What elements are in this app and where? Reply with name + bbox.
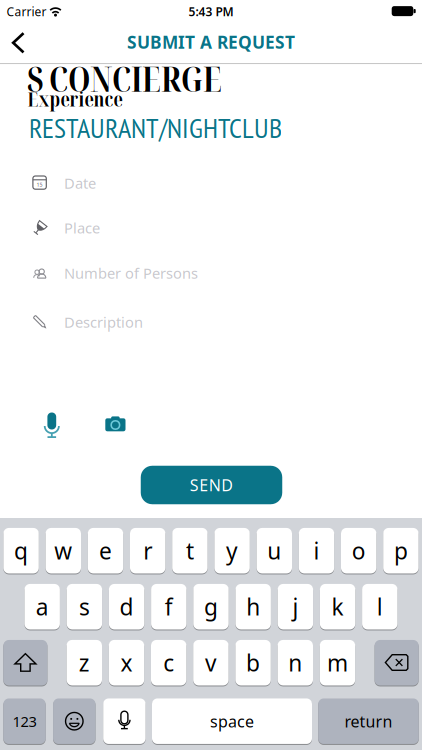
button[interactable]: a: [24, 583, 60, 630]
button[interactable]: Shift: [3, 639, 47, 686]
staticText: z: [79, 648, 90, 678]
staticText: l: [377, 592, 383, 622]
staticText: Carrier: [6, 3, 46, 19]
button[interactable]: SEND: [141, 466, 282, 504]
staticText: n: [288, 648, 302, 678]
button[interactable]: j: [278, 583, 313, 630]
button[interactable]: q: [3, 527, 39, 574]
staticText: r: [143, 536, 152, 566]
button[interactable]: s: [67, 583, 102, 630]
staticText: h: [246, 592, 260, 622]
button[interactable]: u: [257, 527, 292, 574]
button[interactable]: z: [67, 639, 102, 686]
staticText: b: [246, 648, 260, 678]
button[interactable]: k: [320, 583, 355, 630]
staticText: Experience: [27, 85, 122, 112]
staticText: SEND: [190, 474, 233, 496]
staticText: k: [332, 592, 344, 622]
button[interactable]: c: [151, 639, 186, 686]
button[interactable]: l: [362, 583, 397, 630]
button[interactable]: g: [193, 583, 229, 630]
staticText: SUBMIT A REQUEST: [127, 30, 295, 53]
staticText: return: [344, 711, 392, 732]
button[interactable]: o: [341, 527, 376, 574]
staticText: S CONCIERGE: [27, 55, 222, 102]
staticText: Date: [64, 173, 96, 193]
button[interactable]: m: [320, 639, 355, 686]
button[interactable]: Back: [6, 31, 32, 55]
staticText: p: [394, 536, 408, 566]
button[interactable]: Number of Persons: [64, 263, 198, 283]
button[interactable]: p: [383, 527, 419, 574]
staticText: q: [14, 536, 28, 566]
button[interactable]: i: [299, 527, 334, 574]
button[interactable]: r: [130, 527, 165, 574]
staticText: u: [267, 536, 281, 566]
button[interactable]: Dictate: [103, 698, 146, 744]
button[interactable]: f: [151, 583, 186, 630]
button[interactable]: Description: [64, 312, 143, 332]
button[interactable]: Delete: [375, 639, 419, 686]
button[interactable]: Place: [64, 218, 100, 237]
staticText: m: [327, 648, 348, 678]
staticText: s: [79, 592, 90, 622]
staticText: w: [54, 536, 72, 566]
button[interactable]: Record audio: [38, 409, 66, 439]
button[interactable]: Take photo: [102, 413, 128, 435]
staticText: v: [205, 648, 217, 678]
staticText: f: [165, 592, 173, 622]
staticText: e: [99, 536, 112, 566]
staticText: 5:43 PM: [188, 3, 233, 19]
button[interactable]: t: [172, 527, 208, 574]
staticText: x: [120, 648, 132, 678]
button[interactable]: b: [235, 639, 271, 686]
staticText: a: [36, 592, 49, 622]
staticText: RESTAURANT/NIGHTCLUB: [29, 109, 282, 146]
button[interactable]: y: [214, 527, 250, 574]
button[interactable]: Emoji: [53, 698, 95, 744]
staticText: y: [226, 536, 238, 566]
staticText: d: [120, 592, 134, 622]
staticText: i: [313, 536, 319, 566]
staticText: o: [352, 536, 366, 566]
button[interactable]: Space: [152, 698, 312, 744]
staticText: Description: [64, 312, 143, 332]
staticText: space: [210, 711, 254, 732]
staticText: j: [292, 592, 298, 622]
button[interactable]: Return: [318, 698, 419, 744]
staticText: 123: [12, 711, 36, 731]
button[interactable]: h: [235, 583, 271, 630]
staticText: t: [186, 536, 194, 566]
button[interactable]: d: [109, 583, 144, 630]
staticText: Number of Persons: [64, 263, 198, 283]
staticText: g: [204, 592, 218, 622]
button[interactable]: Numbers: [3, 698, 46, 744]
button[interactable]: v: [193, 639, 229, 686]
button[interactable]: Date: [64, 173, 96, 193]
button[interactable]: x: [109, 639, 144, 686]
button[interactable]: e: [88, 527, 123, 574]
staticText: Place: [64, 218, 100, 237]
staticText: c: [163, 648, 174, 678]
staticText: 15: [37, 181, 43, 188]
button[interactable]: SUBMIT A REQUEST: [127, 30, 295, 53]
button[interactable]: w: [46, 527, 81, 574]
button[interactable]: n: [278, 639, 313, 686]
